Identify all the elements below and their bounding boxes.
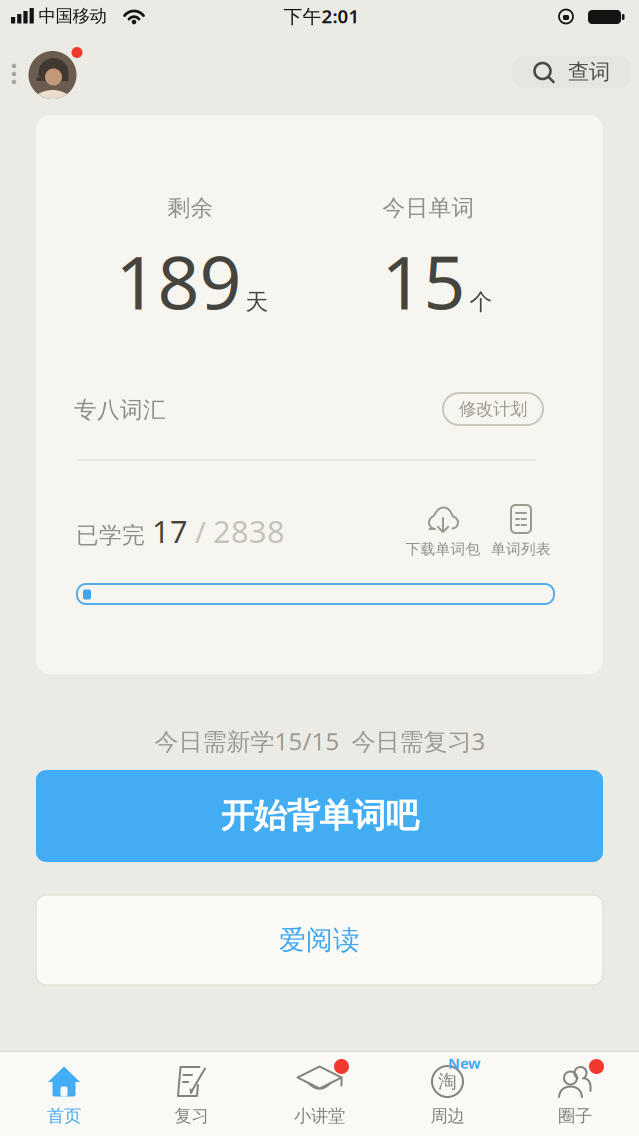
staticText: 开始背单词吧 — [220, 795, 418, 836]
staticText: 复习 — [174, 1105, 208, 1127]
staticText: 剩余 — [167, 194, 213, 222]
button[interactable]: 小讲堂 — [256, 1051, 383, 1135]
button[interactable]: 单词列表 — [477, 502, 565, 564]
staticText: 单词列表 — [491, 540, 551, 558]
staticText: 专八词汇 — [74, 396, 166, 424]
staticText: 查词 — [568, 59, 610, 85]
staticText: 天 — [245, 288, 268, 316]
staticText: 修改计划 — [459, 398, 527, 420]
staticText: 小讲堂 — [294, 1105, 345, 1127]
staticText: 17 — [152, 511, 188, 551]
staticText: New — [448, 1053, 481, 1073]
button[interactable]: 复习 — [128, 1051, 255, 1135]
button[interactable]: 修改计划 — [443, 393, 543, 425]
staticText: 爱阅读 — [279, 924, 360, 956]
staticText: 首页 — [47, 1105, 81, 1127]
staticText: 已学完 — [76, 521, 145, 549]
button[interactable]: 首页 — [0, 1051, 127, 1135]
button[interactable]: 爱阅读 — [36, 895, 603, 985]
staticText: / — [195, 512, 206, 551]
staticText: 圈子 — [558, 1105, 592, 1127]
staticText: 中国移动 — [38, 5, 106, 27]
staticText: 今日需新学15/15 今日需复习3 — [154, 725, 485, 757]
staticText: 下载单词包 — [405, 540, 480, 558]
staticText: 周边 — [430, 1105, 464, 1127]
staticText: 2838 — [213, 511, 285, 551]
staticText: 淘 — [438, 1070, 457, 1093]
staticText: 15 — [381, 232, 465, 330]
button[interactable]: 开始背单词吧 — [36, 770, 603, 862]
staticText: 个 — [469, 288, 492, 316]
staticText: 今日单词 — [382, 194, 474, 222]
button[interactable]: 圈子 — [511, 1051, 638, 1135]
staticText: 下午2:01 — [283, 4, 359, 28]
staticText: 189 — [115, 232, 241, 330]
button[interactable]: 查词 — [512, 56, 631, 88]
button[interactable]: 淘 — [384, 1051, 511, 1135]
button[interactable]: 个人主页 — [28, 51, 76, 99]
button[interactable]: 下载单词包 — [395, 502, 491, 564]
